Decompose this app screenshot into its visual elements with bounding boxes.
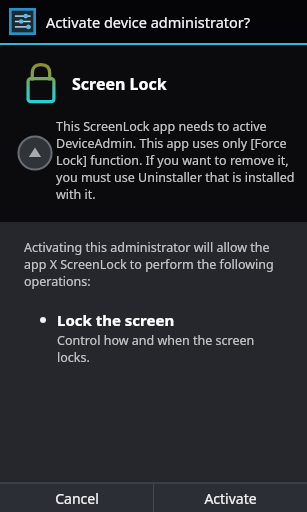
button[interactable]: Activate <box>154 484 307 512</box>
staticText: This ScreenLock app needs to active Devi… <box>56 118 299 203</box>
staticText: Screen Lock <box>72 73 167 95</box>
staticText: Activating this administrator will allow… <box>24 239 295 290</box>
staticText: Activate <box>204 489 257 508</box>
staticText: Lock the screen <box>57 310 175 330</box>
other: App icon <box>9 8 36 35</box>
staticText: Cancel <box>55 489 99 508</box>
staticText: Control how and when the screen locks. <box>57 332 279 366</box>
staticText: Activate device administrator? <box>46 12 251 32</box>
button[interactable]: Collapse description <box>16 134 54 172</box>
button[interactable]: Cancel <box>0 484 153 512</box>
